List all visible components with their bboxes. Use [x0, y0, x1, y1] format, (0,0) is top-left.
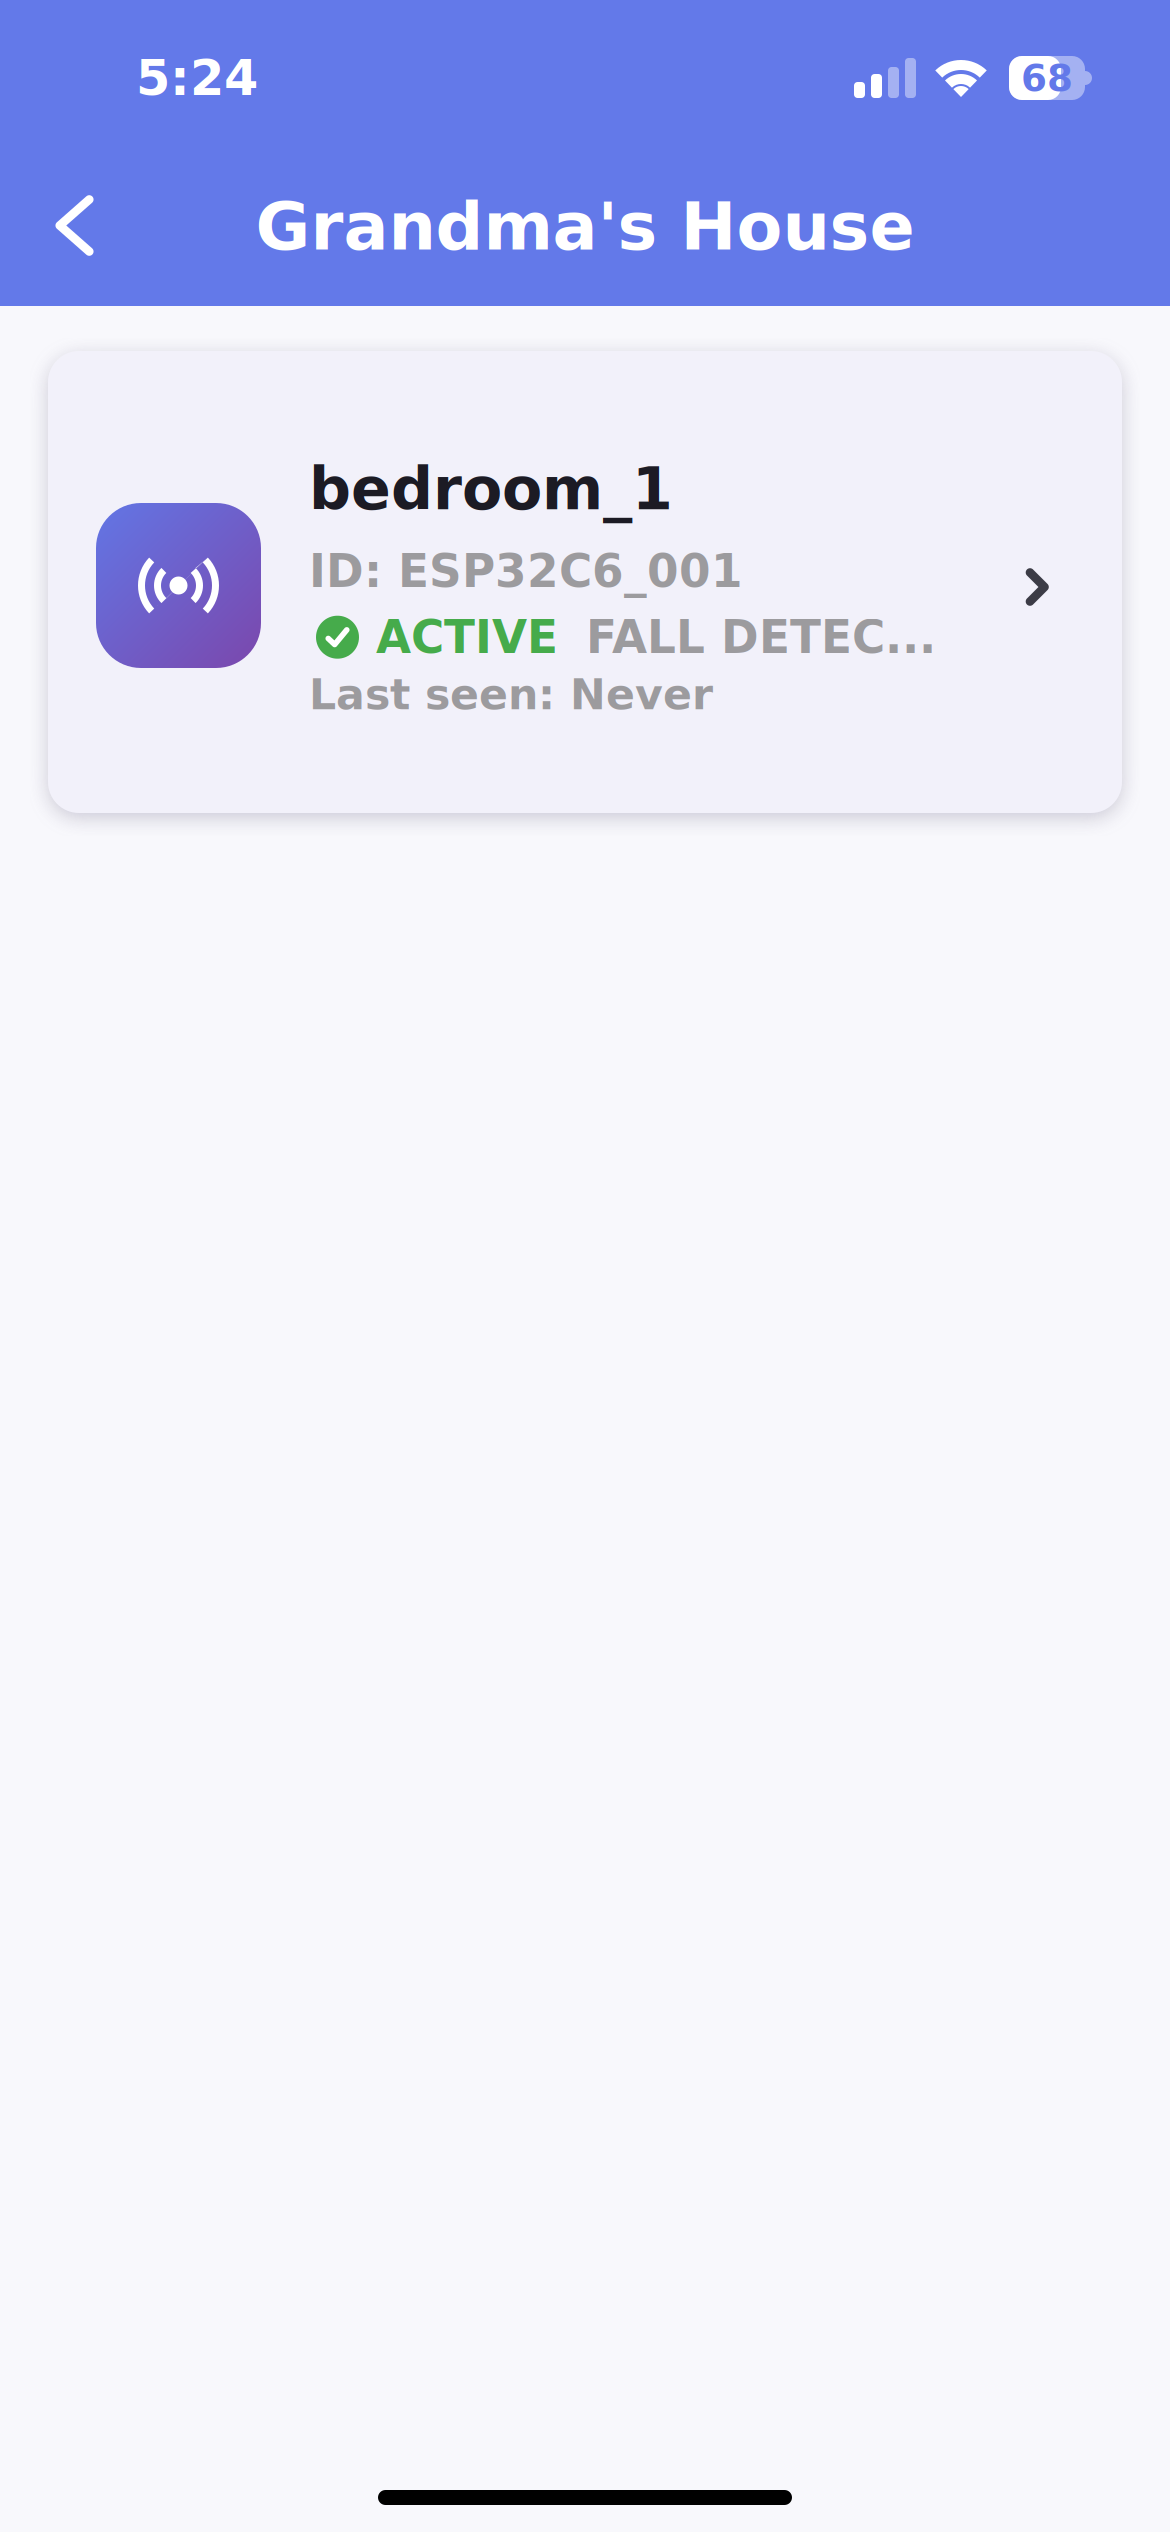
button[interactable]: Back — [10, 162, 142, 294]
staticText: FALL DETEC... — [586, 611, 936, 664]
staticText: Last seen: Never — [309, 670, 713, 719]
staticText: Grandma's House — [255, 188, 914, 265]
staticText: ACTIVE — [376, 611, 558, 664]
staticText: bedroom_1 — [309, 455, 673, 523]
button[interactable]: bedroom_1 — [48, 351, 1122, 813]
staticText: 68 — [1021, 56, 1073, 100]
staticText: 5:24 — [136, 49, 258, 107]
staticText: ID: ESP32C6_001 — [309, 545, 743, 598]
